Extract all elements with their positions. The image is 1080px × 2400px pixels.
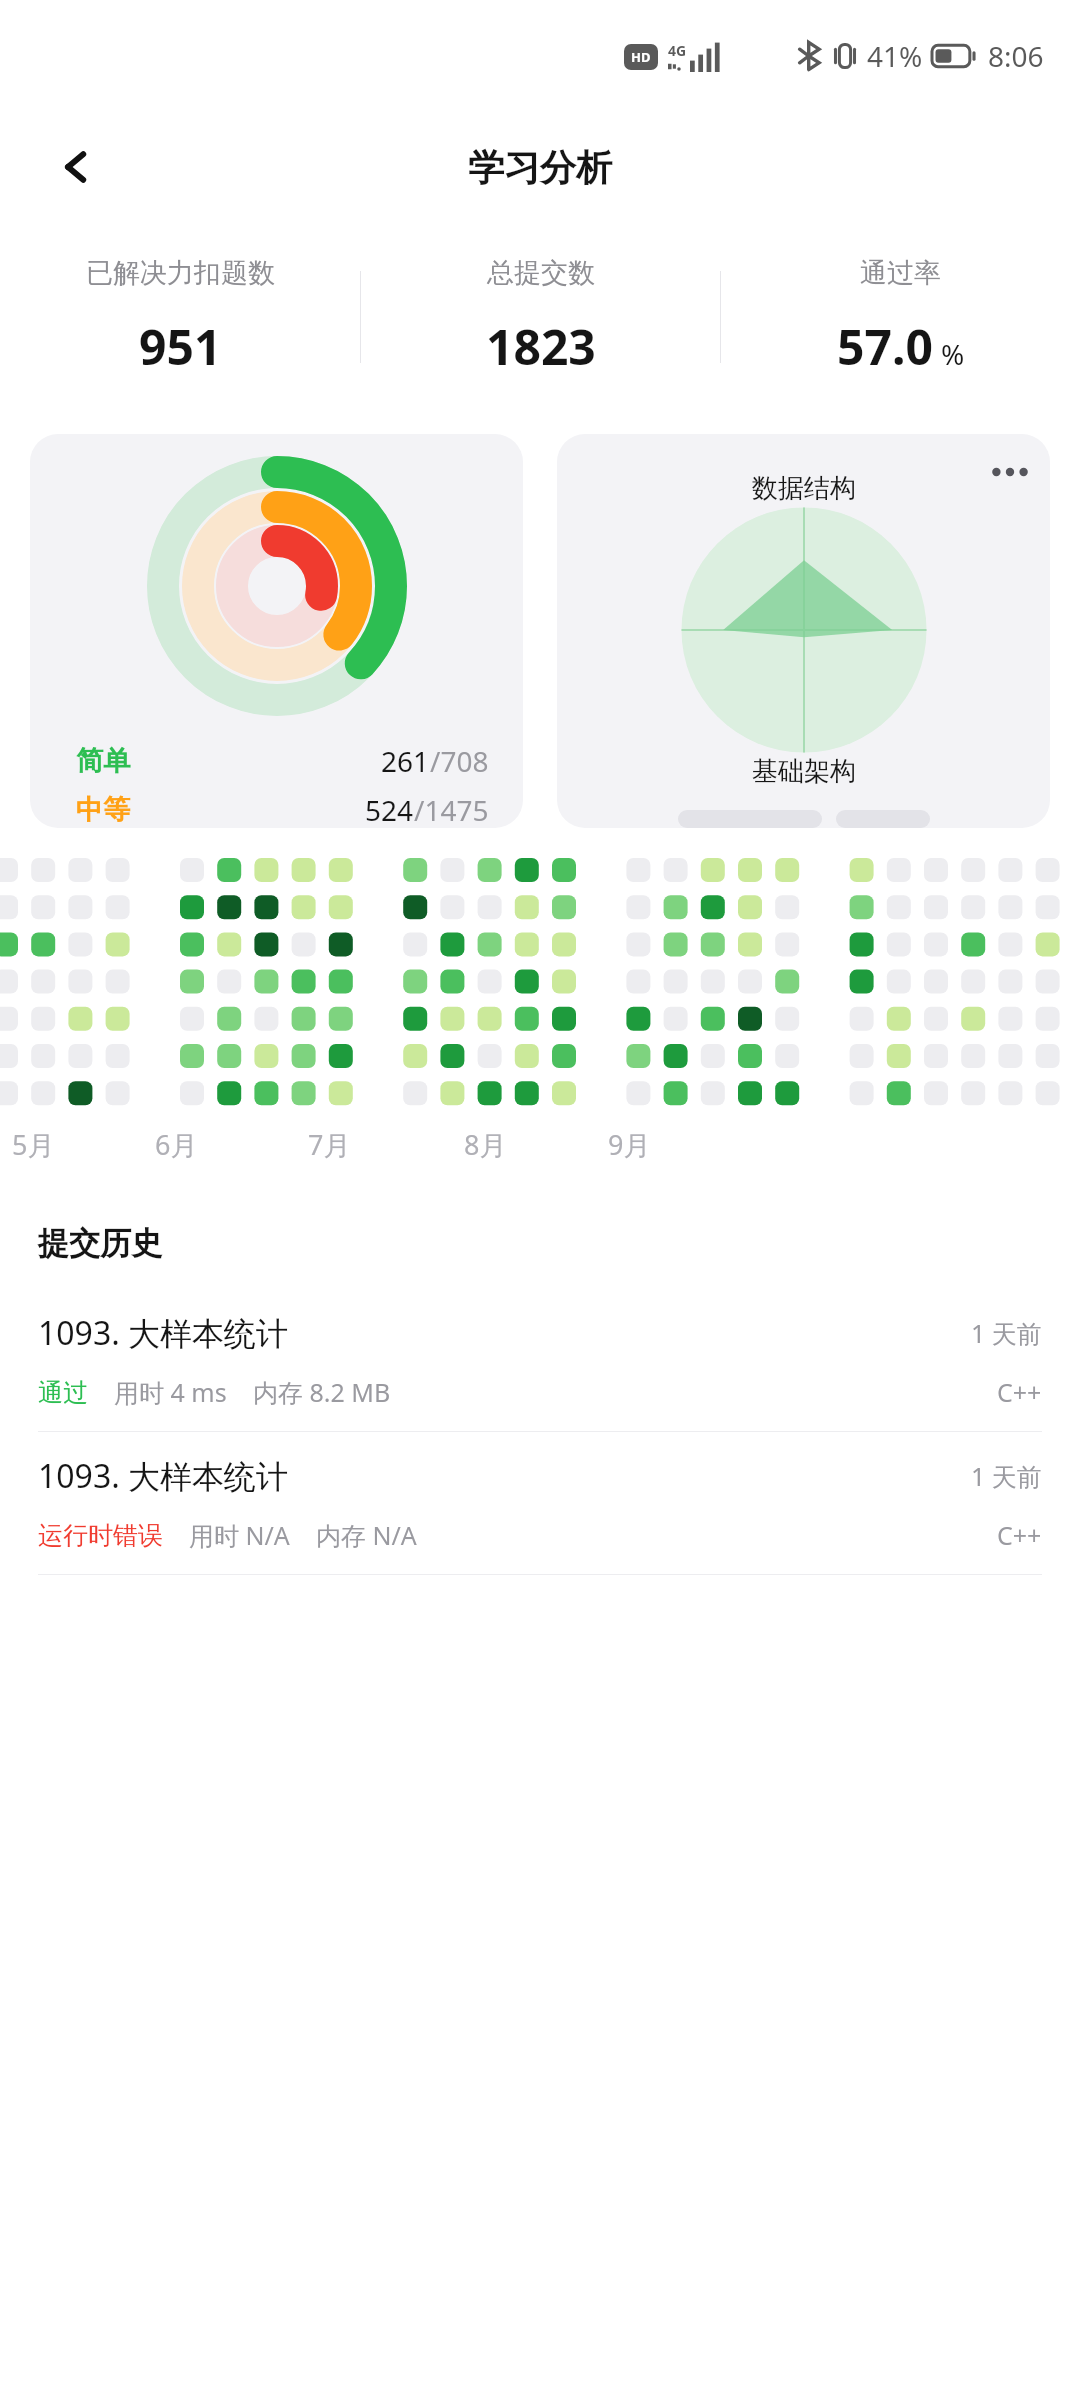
staticText: %: [941, 335, 965, 373]
button[interactable]: 1093. 大样本统计: [0, 1432, 1080, 1574]
staticText: 8月: [464, 1126, 507, 1163]
staticText: 1 天前: [971, 1316, 1042, 1350]
staticText: 内存 8.2 MB: [253, 1375, 391, 1409]
staticText: C++: [997, 1518, 1042, 1552]
staticText: 运行时错误: [38, 1520, 163, 1551]
button[interactable]: 通过率: [721, 256, 1080, 379]
staticText: C++: [997, 1375, 1042, 1409]
staticText: 7月: [308, 1126, 351, 1163]
staticText: 通过: [38, 1377, 88, 1408]
staticText: /1475: [414, 791, 489, 828]
staticText: 内存 N/A: [316, 1518, 417, 1552]
staticText: 中等: [76, 793, 130, 827]
staticText: 基础架构: [752, 755, 856, 788]
staticText: 学习分析: [468, 145, 612, 190]
button[interactable]: 简单: [30, 434, 523, 828]
staticText: HD: [631, 48, 651, 66]
button[interactable]: 回溯: [836, 810, 930, 828]
staticText: 简单: [76, 744, 130, 778]
staticText: 4G: [668, 41, 687, 60]
button[interactable]: More options: [986, 448, 1034, 496]
staticText: 524: [365, 791, 414, 828]
staticText: 数据结构: [752, 472, 856, 505]
staticText: 1093. 大样本统计: [38, 1454, 289, 1498]
staticText: 9月: [608, 1126, 651, 1163]
staticText: 951: [139, 314, 222, 379]
staticText: 提交历史: [38, 1224, 162, 1263]
staticText: 1093. 大样本统计: [38, 1311, 289, 1355]
staticText: 用时 4 ms: [114, 1375, 227, 1409]
staticText: 通过率: [860, 256, 941, 290]
button[interactable]: 1093. 大样本统计: [0, 1289, 1080, 1431]
staticText: 用时 N/A: [189, 1518, 290, 1552]
button[interactable]: 已解决力扣题数: [0, 256, 360, 379]
button[interactable]: Back: [44, 135, 108, 199]
staticText: 6月: [155, 1126, 198, 1163]
staticText: 41%: [867, 37, 923, 75]
staticText: 8:06: [988, 37, 1044, 75]
staticText: 已解决力扣题数: [86, 256, 275, 290]
staticText: 5月: [12, 1126, 55, 1163]
staticText: /708: [430, 742, 489, 780]
staticText: 261: [381, 742, 430, 780]
staticText: 57.0: [837, 314, 933, 379]
staticText: 1823: [486, 314, 596, 379]
staticText: 1 天前: [971, 1459, 1042, 1493]
staticText: 总提交数: [487, 256, 595, 290]
button[interactable]: 总提交数: [361, 256, 720, 379]
